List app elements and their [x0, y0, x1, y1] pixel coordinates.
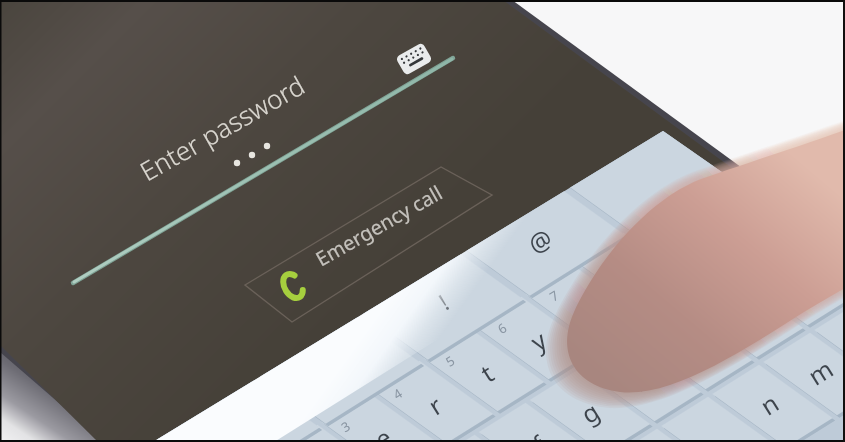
button[interactable]: Enter password	[70, 55, 460, 285]
button[interactable]: Switch keyboard	[398, 42, 436, 80]
button[interactable]: Emergency call	[0, 0, 845, 442]
button[interactable]: Emergency call	[245, 165, 495, 323]
